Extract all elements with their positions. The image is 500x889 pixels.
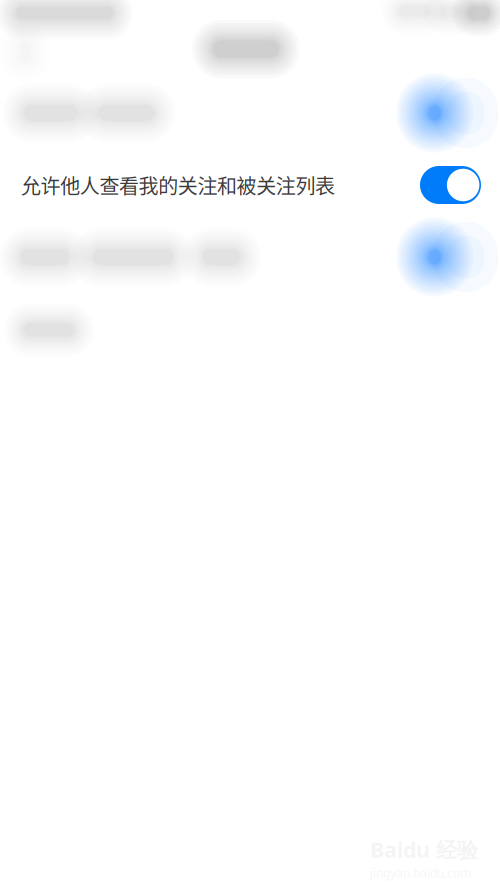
staticText: jingyan.baidu.com bbox=[370, 865, 471, 881]
button[interactable]: 允许他人查看我的关注和被关注列表 bbox=[0, 155, 500, 215]
staticText: 允许他人查看我的关注和被关注列表 bbox=[21, 170, 335, 199]
staticText: Baidu 经验 bbox=[370, 835, 478, 864]
